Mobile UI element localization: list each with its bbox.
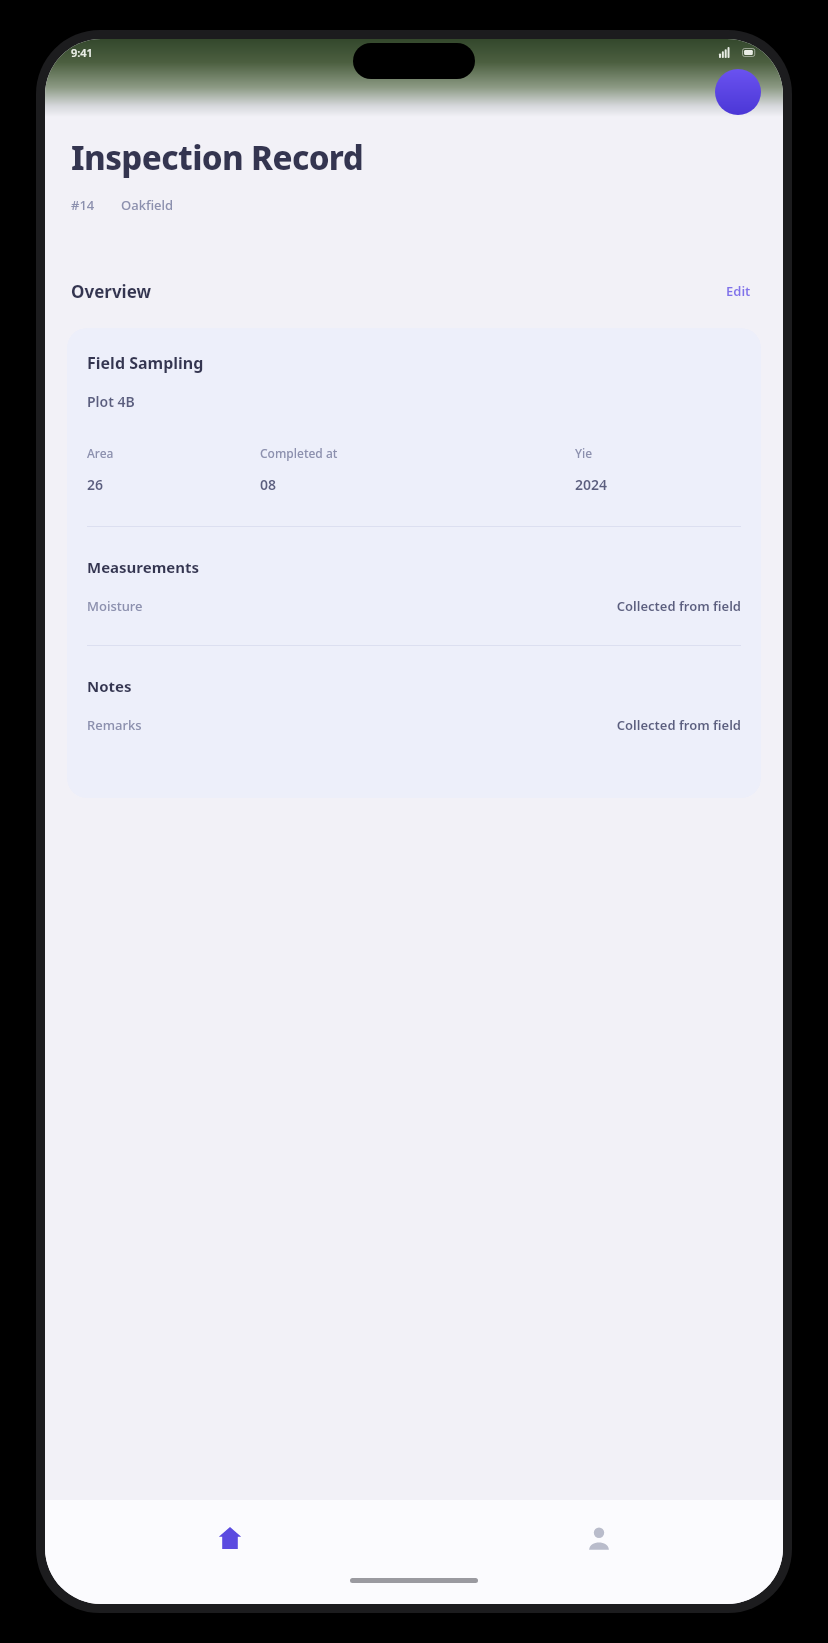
button[interactable]: Edit — [720, 276, 757, 306]
staticText: Moisture — [87, 597, 143, 615]
button[interactable]: Home — [45, 1500, 414, 1576]
staticText: Field Sampling — [87, 352, 204, 374]
button[interactable]: Profile — [715, 69, 761, 115]
staticText: Collected from field — [616, 716, 741, 734]
staticText: Measurements — [87, 557, 200, 577]
staticText: Edit — [726, 282, 751, 300]
staticText: Inspection Record — [71, 135, 364, 180]
staticText: Area — [87, 445, 114, 461]
staticText: Overview — [71, 280, 152, 303]
staticText: Notes — [87, 676, 132, 696]
staticText: 08 — [260, 475, 277, 494]
staticText: Remarks — [87, 716, 142, 734]
staticText: Collected from field — [616, 597, 741, 615]
staticText: Yie — [575, 445, 593, 461]
staticText: 2024 — [575, 475, 608, 494]
staticText: Plot 4B — [87, 392, 135, 411]
button[interactable]: Profile — [414, 1500, 783, 1576]
staticText: 9:41 — [71, 45, 93, 60]
staticText: Completed at — [260, 445, 338, 461]
staticText: 26 — [87, 475, 104, 494]
button[interactable]: Field Sampling — [67, 328, 761, 798]
staticText: Oakfield — [121, 196, 174, 214]
staticText: #14 — [71, 196, 95, 214]
